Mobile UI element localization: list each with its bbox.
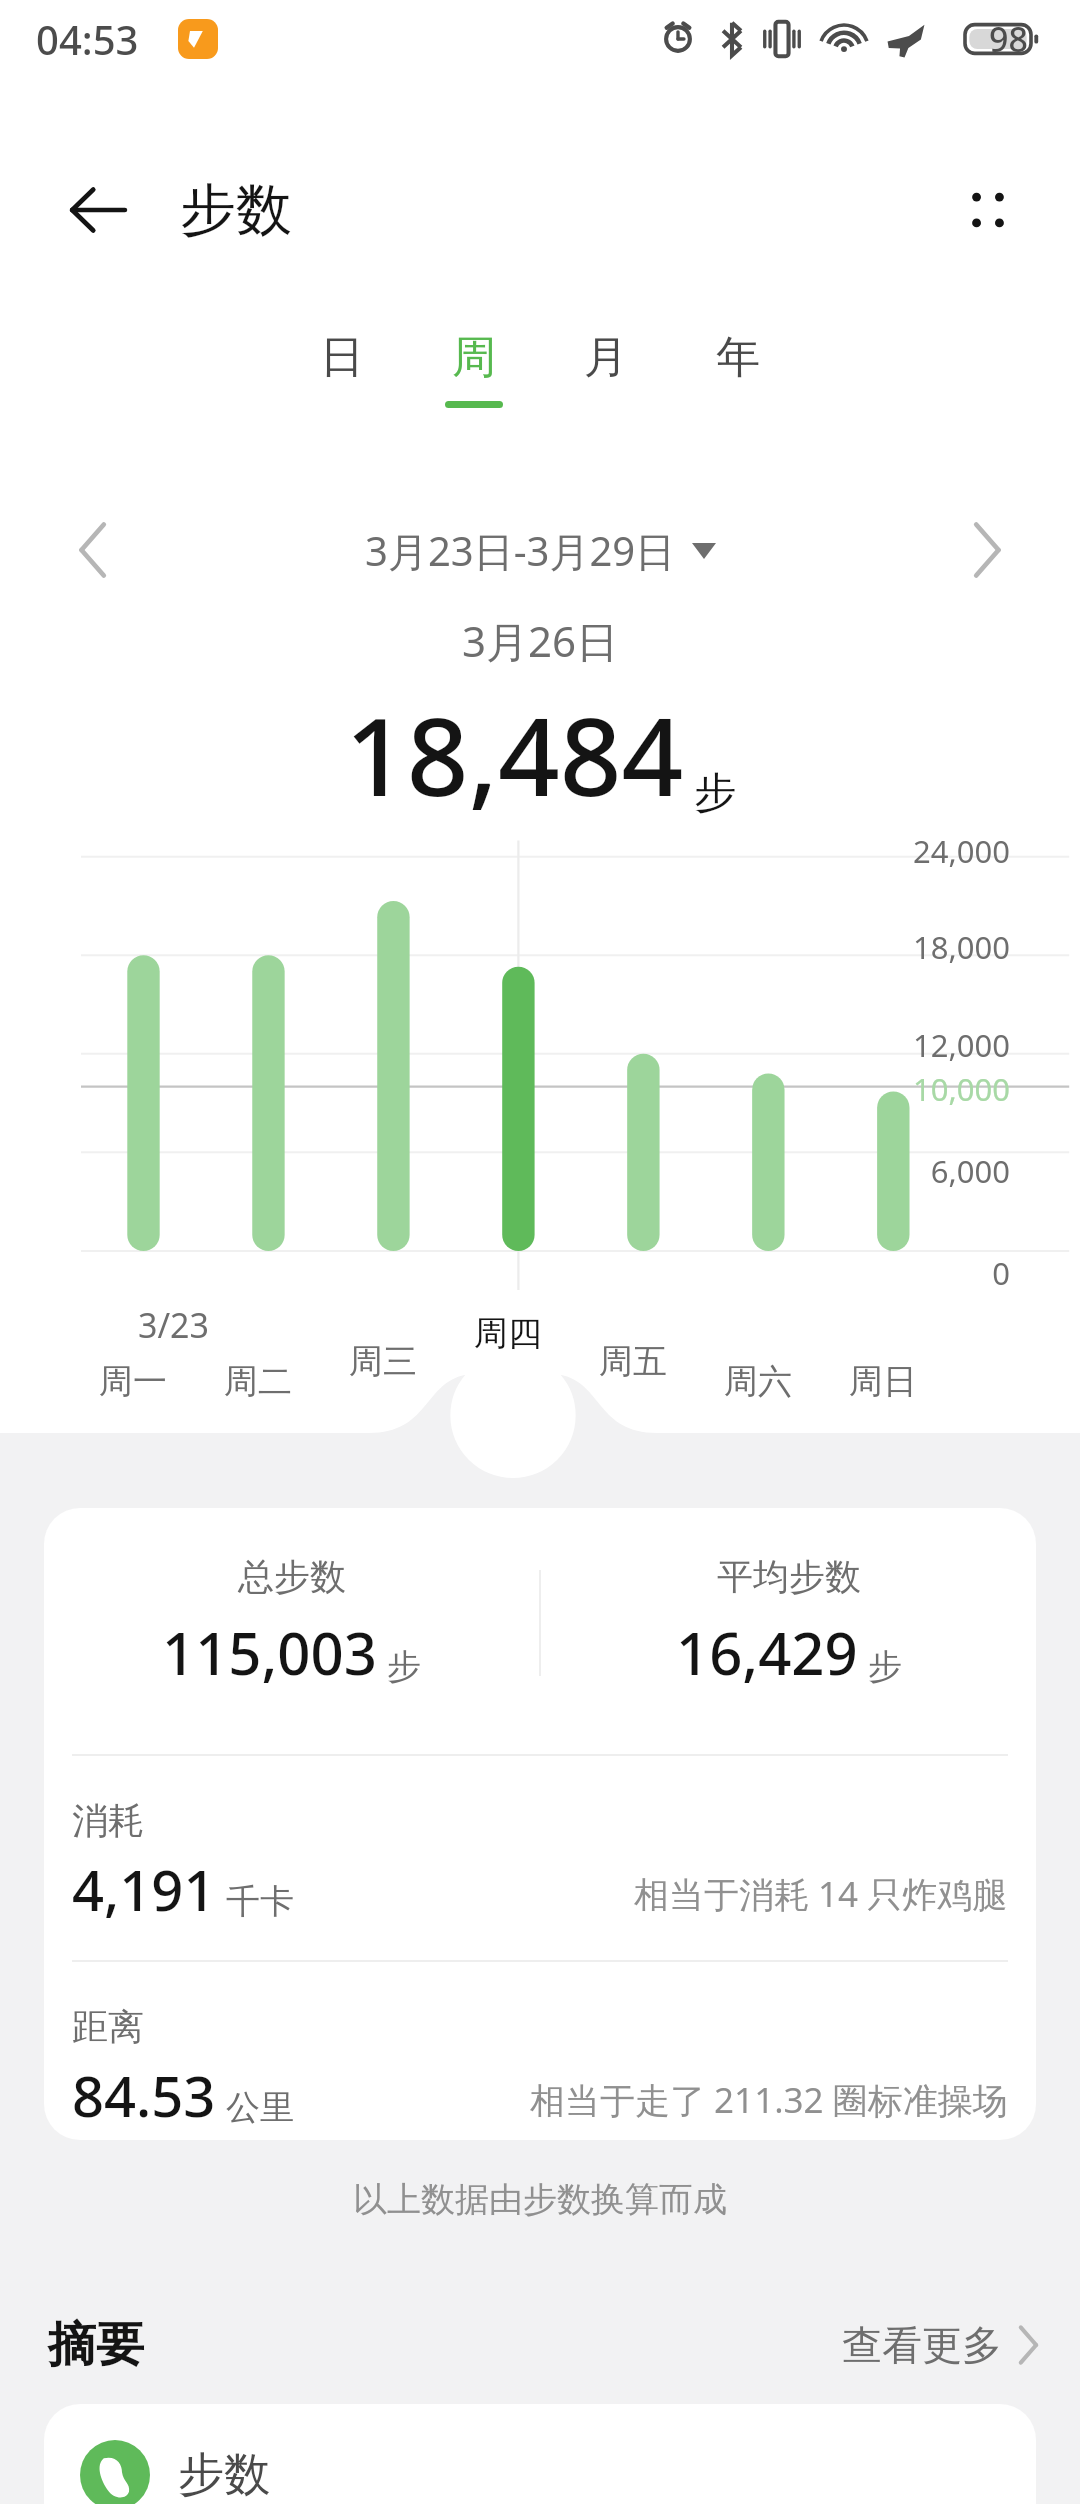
staticText: 18,000 (913, 926, 1010, 968)
staticText: 平均步数 (717, 1554, 861, 1599)
staticText: 日 (320, 330, 364, 385)
button[interactable]: 年 (672, 330, 804, 440)
staticText: 相当于消耗 14 只炸鸡腿 (634, 1870, 1008, 1918)
staticText: 公里 (226, 2086, 294, 2129)
button[interactable]: More options (944, 166, 1032, 254)
staticText: 周六 (724, 1360, 792, 1403)
staticText: 消耗 (72, 1798, 144, 1843)
staticText: 周 (452, 330, 496, 385)
staticText: 6,000 (930, 1150, 1010, 1192)
staticText: 月 (584, 330, 628, 385)
staticText: 周日 (849, 1360, 917, 1403)
button[interactable]: Previous week (48, 505, 138, 595)
staticText: 18,484 (345, 681, 684, 828)
staticText: 查看更多 (842, 2320, 1002, 2370)
staticText: 24,000 (913, 830, 1010, 872)
button[interactable]: Back (52, 165, 142, 255)
staticText: 步 (868, 1645, 902, 1688)
staticText: 12,000 (913, 1024, 1010, 1066)
staticText: 年 (716, 330, 760, 385)
staticText: 84.53 (72, 2057, 216, 2133)
staticText: 周三 (349, 1340, 417, 1383)
staticText: 摘要 (48, 2315, 144, 2375)
staticText: 4,191 (72, 1851, 216, 1927)
button[interactable]: 月 (540, 330, 672, 440)
staticText: 相当于走了 211.32 圈标准操场 (530, 2076, 1008, 2124)
staticText: 周四 (474, 1312, 542, 1355)
button[interactable]: 3月23日-3月29日 (365, 523, 716, 578)
staticText: 周五 (599, 1340, 667, 1383)
button[interactable]: Next week (942, 505, 1032, 595)
button[interactable]: 查看更多 (842, 2320, 1040, 2370)
staticText: 千卡 (226, 1880, 294, 1923)
staticText: 04:53 (36, 12, 139, 66)
staticText: 以上数据由步数换算而成 (353, 2178, 727, 2221)
button[interactable]: 步数 (44, 2404, 1036, 2504)
staticText: 周二 (224, 1360, 292, 1403)
staticText: 3月23日-3月29日 (365, 523, 676, 578)
staticText: 步 (694, 767, 736, 820)
button[interactable]: 日 (276, 330, 408, 440)
staticText: 距离 (72, 2004, 144, 2049)
staticText: 总步数 (238, 1554, 346, 1599)
staticText: 98 (989, 16, 1028, 62)
staticText: 周一 (99, 1360, 167, 1403)
staticText: 115,003 (162, 1613, 377, 1692)
staticText: 0 (992, 1252, 1010, 1294)
staticText: 步数 (180, 175, 292, 246)
staticText: 10,000 (913, 1068, 1010, 1110)
staticText: 16,429 (676, 1613, 858, 1692)
button[interactable]: 周 (408, 330, 540, 440)
staticText: 步 (387, 1645, 421, 1688)
staticText: 3月26日 (462, 612, 619, 669)
staticText: 3/23 (138, 1302, 209, 1348)
staticText: 步数 (178, 2446, 270, 2504)
